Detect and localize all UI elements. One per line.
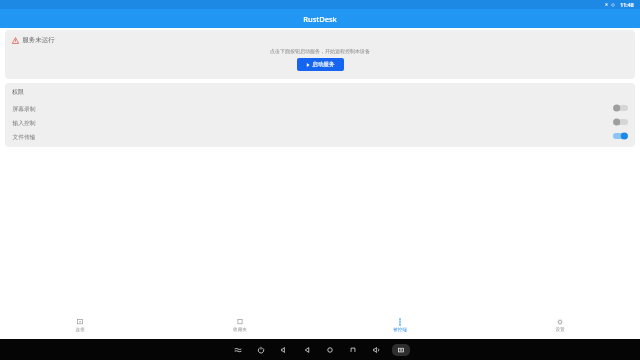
button[interactable]: 屏幕录制 xyxy=(5,101,635,115)
staticText: 权限 xyxy=(12,88,24,96)
button[interactable]: 文件传输 xyxy=(5,129,635,143)
button[interactable]: Power xyxy=(254,343,267,356)
button[interactable]: Volume down xyxy=(277,343,290,356)
staticText: 收藏夹 xyxy=(233,327,247,333)
button[interactable]: 连接 xyxy=(0,311,160,339)
staticText: 连接 xyxy=(75,327,85,333)
button[interactable]: 被控端 xyxy=(320,311,480,339)
button[interactable]: 启动服务 xyxy=(297,58,344,71)
staticText: 设置 xyxy=(555,327,565,333)
staticText: RustDesk xyxy=(303,14,337,24)
staticText: 被控端 xyxy=(393,327,407,333)
staticText: 点击下面按钮启动服务，开始远程控制本设备 xyxy=(270,48,370,54)
button[interactable]: Back xyxy=(300,343,313,356)
button[interactable]: Recents xyxy=(346,343,359,356)
button[interactable]: Screenshot xyxy=(392,344,410,356)
staticText: 文件传输 xyxy=(12,133,36,140)
button[interactable]: Volume up xyxy=(369,343,382,356)
staticText: 11:48 xyxy=(620,1,634,8)
staticText: 启动服务 xyxy=(312,61,335,68)
staticText: 服务未运行 xyxy=(22,36,55,44)
staticText: 屏幕录制 xyxy=(12,105,36,112)
button[interactable]: 设置 xyxy=(480,311,640,339)
button[interactable]: Toggle xyxy=(231,343,244,356)
button[interactable]: Home xyxy=(323,343,336,356)
staticText: 输入控制 xyxy=(12,119,36,126)
button[interactable]: 输入控制 xyxy=(5,115,635,129)
button[interactable]: 收藏夹 xyxy=(160,311,320,339)
